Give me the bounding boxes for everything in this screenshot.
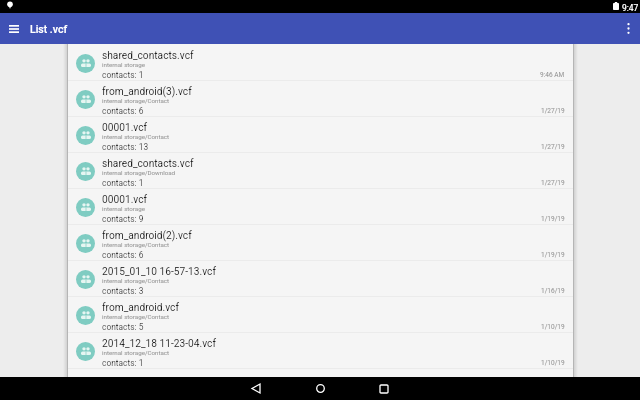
- button[interactable]: Open navigation drawer: [0, 13, 27, 44]
- staticText: contacts: 6: [102, 106, 144, 116]
- staticText: contacts: 9: [102, 214, 144, 224]
- staticText: 1/27/19: [541, 179, 565, 187]
- button[interactable]: from_android(3).vcf: [68, 81, 573, 117]
- staticText: internal storage/Contact: [102, 133, 170, 140]
- button[interactable]: 00001.vcf: [68, 189, 573, 225]
- staticText: 1/19/19: [541, 251, 565, 259]
- button[interactable]: 00001.vcf: [68, 117, 573, 153]
- staticText: contacts: 6: [102, 250, 144, 260]
- staticText: internal storage/Download: [102, 169, 176, 176]
- button[interactable]: 2015_01_10 16-57-13.vcf: [68, 261, 573, 297]
- staticText: 9:47: [622, 3, 639, 13]
- staticText: 1/10/19: [541, 359, 565, 367]
- button[interactable]: 2014_12_18 11-23-04.vcf: [68, 333, 573, 369]
- staticText: internal storage: [102, 205, 145, 212]
- staticText: 1/27/19: [541, 143, 565, 151]
- button[interactable]: from_android.vcf: [68, 297, 573, 333]
- staticText: contacts: 1: [102, 70, 144, 80]
- button[interactable]: Recent apps: [363, 377, 405, 400]
- staticText: internal storage: [102, 61, 145, 68]
- staticText: 1/16/19: [541, 287, 565, 295]
- staticText: contacts: 3: [102, 286, 144, 296]
- staticText: 2014_12_18 11-23-04.vcf: [102, 338, 216, 350]
- staticText: contacts: 5: [102, 322, 144, 332]
- button[interactable]: shared_contacts.vcf: [68, 45, 573, 81]
- staticText: shared_contacts.vcf: [102, 158, 194, 170]
- staticText: contacts: 13: [102, 142, 149, 152]
- staticText: shared_contacts.vcf: [102, 50, 194, 62]
- staticText: 1/10/19: [541, 323, 565, 331]
- staticText: 00001.vcf: [102, 122, 148, 134]
- button[interactable]: from_android(2).vcf: [68, 225, 573, 261]
- staticText: internal storage/Contact: [102, 313, 170, 320]
- staticText: contacts: 1: [102, 178, 144, 188]
- button[interactable]: Home: [299, 377, 341, 400]
- staticText: 9:46 AM: [540, 71, 565, 79]
- staticText: internal storage/Contact: [102, 277, 170, 284]
- staticText: internal storage/Contact: [102, 97, 170, 104]
- staticText: 1/19/19: [541, 215, 565, 223]
- staticText: from_android(3).vcf: [102, 86, 192, 98]
- staticText: from_android.vcf: [102, 302, 179, 314]
- staticText: 2015_01_10 16-57-13.vcf: [102, 266, 216, 278]
- staticText: internal storage/Contact: [102, 241, 170, 248]
- staticText: 00001.vcf: [102, 194, 148, 206]
- staticText: contacts: 1: [102, 358, 144, 368]
- button[interactable]: shared_contacts.vcf: [68, 153, 573, 189]
- staticText: internal storage/Contact: [102, 349, 170, 356]
- staticText: from_android(2).vcf: [102, 230, 192, 242]
- staticText: List .vcf: [30, 23, 68, 35]
- staticText: 1/27/19: [541, 107, 565, 115]
- button[interactable]: Back: [235, 377, 277, 400]
- button[interactable]: More options: [617, 13, 640, 44]
